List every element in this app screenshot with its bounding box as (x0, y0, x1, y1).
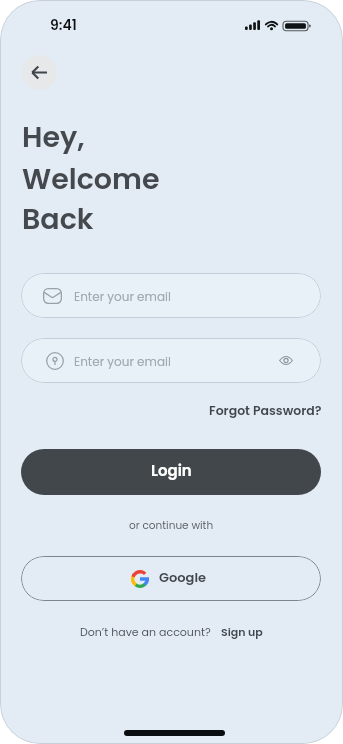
button[interactable]: Forgot Password? (209, 402, 322, 419)
button[interactable]: Enter your email (21, 338, 321, 383)
staticText: Google (159, 568, 207, 586)
staticText: 9:41 (50, 15, 77, 35)
button[interactable]: Google (21, 556, 321, 601)
button[interactable]: Login (21, 449, 321, 495)
button[interactable] (22, 55, 57, 90)
staticText: Don’t have an account? (80, 624, 211, 639)
button[interactable]: Sign up (221, 624, 263, 639)
staticText: Welcome (22, 159, 160, 199)
button[interactable]: Enter your email (21, 273, 321, 318)
staticText: Login (151, 460, 192, 481)
staticText: Enter your email (74, 288, 171, 305)
staticText: Hey, (22, 117, 85, 157)
staticText: or continue with (129, 518, 214, 533)
staticText: Enter your email (74, 353, 171, 370)
staticText: Back (22, 199, 94, 239)
